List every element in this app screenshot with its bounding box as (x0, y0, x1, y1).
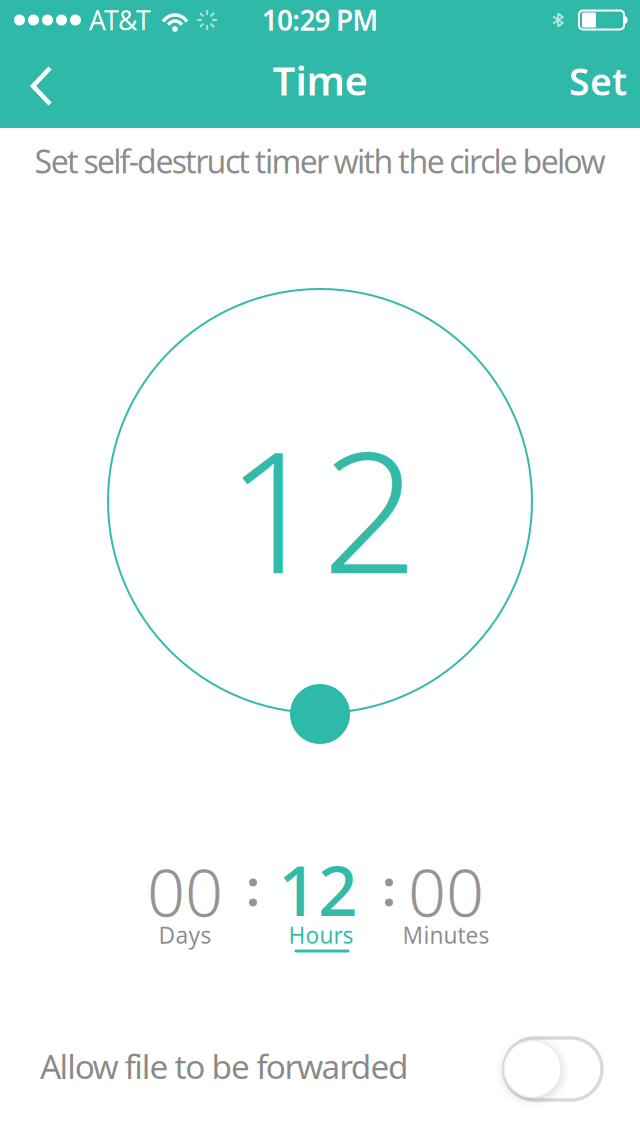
staticText: 00 (147, 847, 223, 935)
button[interactable]: Timer handle (290, 684, 350, 744)
staticText: Set (569, 56, 627, 106)
staticText: Allow file to be forwarded (40, 1044, 409, 1088)
staticText: Time (272, 53, 367, 106)
staticText: Minutes (402, 920, 489, 950)
button[interactable]: Hours (288, 920, 353, 950)
staticText: 12 (278, 843, 358, 935)
staticText: 10:29 PM (262, 1, 378, 39)
button[interactable]: Minutes (402, 920, 489, 950)
button[interactable]: Set (569, 36, 640, 132)
staticText: Set self-destruct timer with the circle … (34, 140, 606, 182)
staticText: Hours (288, 920, 353, 950)
staticText: 00 (408, 847, 484, 935)
button[interactable]: Allow file to be forwarded (504, 1038, 602, 1100)
staticText: AT&T (89, 2, 151, 38)
button[interactable]: Back (0, 40, 53, 128)
staticText: 12 (226, 396, 418, 620)
button[interactable]: Days (158, 920, 211, 950)
staticText: Days (158, 920, 211, 950)
